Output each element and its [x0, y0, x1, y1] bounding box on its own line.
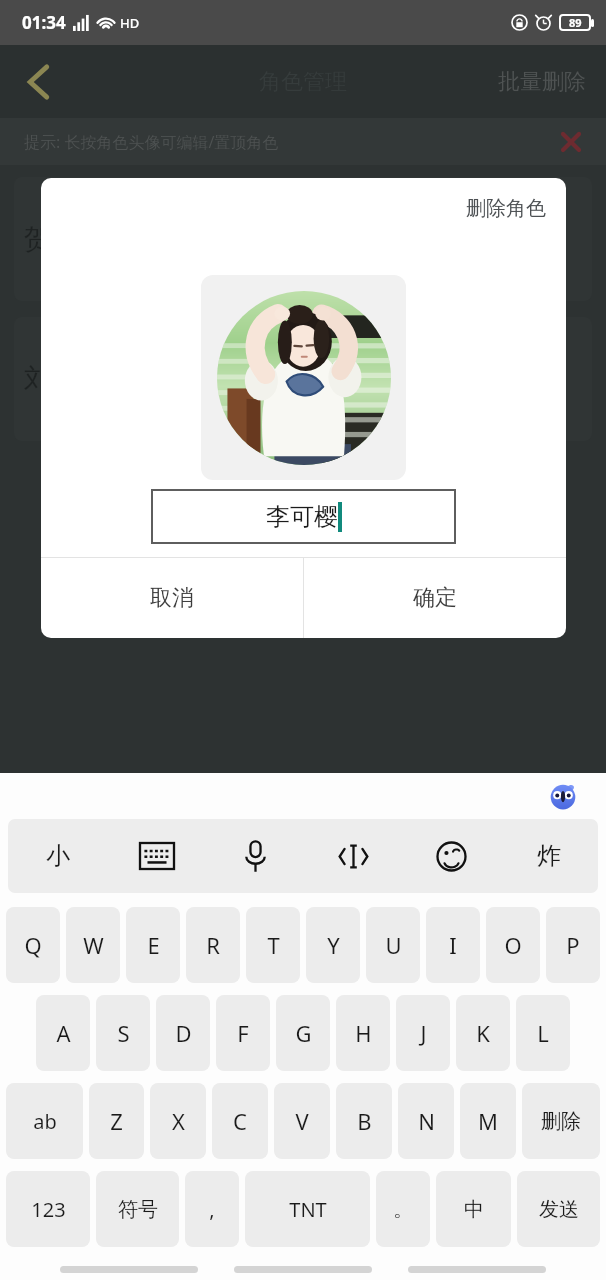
button[interactable]: U — [366, 907, 420, 983]
button[interactable]: Voice input — [206, 819, 304, 893]
staticText: S — [117, 1018, 130, 1048]
staticText: Z — [110, 1106, 123, 1136]
button[interactable]: ab — [6, 1083, 83, 1159]
button[interactable]: 批量删除 — [492, 58, 592, 106]
button[interactable]: 贺 — [14, 177, 592, 301]
staticText: K — [476, 1018, 490, 1048]
button[interactable]: 新建角色 — [223, 535, 383, 577]
staticText: 01:34 — [22, 11, 66, 34]
button[interactable]: Move cursor — [304, 819, 402, 893]
button[interactable]: 刘 — [14, 317, 592, 441]
button[interactable]: Avatar — [201, 275, 406, 480]
button[interactable]: Q — [6, 907, 60, 983]
staticText: 发送 — [539, 1197, 579, 1222]
button[interactable]: 炸 — [500, 819, 598, 893]
staticText: T — [267, 930, 280, 960]
staticText: 取消 — [150, 584, 194, 612]
staticText: F — [237, 1018, 249, 1048]
staticText: P — [566, 930, 580, 960]
staticText: 炸 — [537, 841, 561, 871]
staticText: J — [420, 1018, 427, 1048]
staticText: 确定 — [413, 584, 457, 612]
button[interactable]: 发送 — [517, 1171, 600, 1247]
staticText: B — [357, 1106, 372, 1136]
button[interactable]: 小 — [8, 819, 107, 893]
button[interactable]: T — [246, 907, 300, 983]
button[interactable]: Emoji — [402, 819, 500, 893]
staticText: ab — [33, 1108, 57, 1135]
staticText: N — [418, 1106, 435, 1136]
button[interactable]: X — [150, 1083, 206, 1159]
staticText: Y — [327, 930, 340, 960]
staticText: TNT — [289, 1196, 327, 1223]
button[interactable]: N — [398, 1083, 454, 1159]
staticText: X — [172, 1106, 185, 1136]
staticText: R — [206, 930, 220, 960]
button[interactable]: H — [336, 995, 390, 1071]
staticText: , — [209, 1196, 215, 1223]
button[interactable]: A — [36, 995, 90, 1071]
staticText: 贺 — [24, 222, 51, 256]
button[interactable]: E — [126, 907, 180, 983]
button[interactable]: C — [212, 1083, 268, 1159]
button[interactable]: Back — [12, 55, 66, 109]
button[interactable]: Voice assistant — [546, 779, 580, 813]
staticText: U — [385, 930, 402, 960]
staticText: 角色管理 — [259, 68, 347, 96]
staticText: 小 — [46, 841, 70, 871]
button[interactable]: W — [66, 907, 120, 983]
button[interactable]: TNT — [245, 1171, 370, 1247]
button[interactable]: V — [274, 1083, 330, 1159]
staticText: A — [56, 1018, 71, 1048]
staticText: 李可樱 — [266, 502, 338, 532]
staticText: 。 — [393, 1197, 413, 1222]
staticText: 符号 — [118, 1197, 158, 1222]
button[interactable]: B — [336, 1083, 392, 1159]
staticText: V — [295, 1106, 309, 1136]
button[interactable]: G — [276, 995, 330, 1071]
button[interactable]: 符号 — [96, 1171, 179, 1247]
staticText: 123 — [31, 1196, 66, 1223]
button[interactable]: F — [216, 995, 270, 1071]
staticText: Q — [24, 930, 42, 960]
button[interactable]: 李可樱 — [151, 489, 456, 544]
staticText: C — [233, 1106, 247, 1136]
staticText: 删除 — [541, 1109, 581, 1134]
staticText: HD — [120, 14, 140, 32]
staticText: W — [83, 930, 104, 960]
button[interactable]: L — [516, 995, 570, 1071]
staticText: 中 — [464, 1197, 484, 1222]
button[interactable]: P — [546, 907, 600, 983]
staticText: 删除角色 — [466, 196, 546, 221]
button[interactable]: Close hint — [554, 125, 588, 159]
staticText: M — [478, 1106, 498, 1136]
staticText: O — [504, 930, 522, 960]
staticText: 提示: 长按角色头像可编辑/置顶角色 — [24, 131, 279, 153]
button[interactable]: 中 — [436, 1171, 511, 1247]
button[interactable]: J — [396, 995, 450, 1071]
button[interactable]: I — [426, 907, 480, 983]
button[interactable]: K — [456, 995, 510, 1071]
button[interactable]: Keyboard — [107, 819, 206, 893]
button[interactable]: 确定 — [304, 558, 566, 638]
button[interactable]: , — [185, 1171, 239, 1247]
staticText: 89 — [569, 15, 582, 30]
button[interactable]: M — [460, 1083, 516, 1159]
button[interactable]: 取消 — [41, 558, 303, 638]
button[interactable]: R — [186, 907, 240, 983]
staticText: I — [449, 930, 457, 960]
staticText: 刘 — [24, 362, 51, 396]
button[interactable]: 。 — [376, 1171, 430, 1247]
button[interactable]: 123 — [6, 1171, 90, 1247]
button[interactable]: Y — [306, 907, 360, 983]
staticText: E — [147, 930, 160, 960]
staticText: 批量删除 — [498, 68, 586, 96]
button[interactable]: 删除 — [522, 1083, 600, 1159]
button[interactable]: O — [486, 907, 540, 983]
button[interactable]: Z — [89, 1083, 144, 1159]
staticText: G — [295, 1018, 312, 1048]
button[interactable]: D — [156, 995, 210, 1071]
button[interactable]: 删除角色 — [452, 184, 560, 233]
staticText: 新建角色 — [265, 544, 341, 568]
button[interactable]: S — [96, 995, 150, 1071]
